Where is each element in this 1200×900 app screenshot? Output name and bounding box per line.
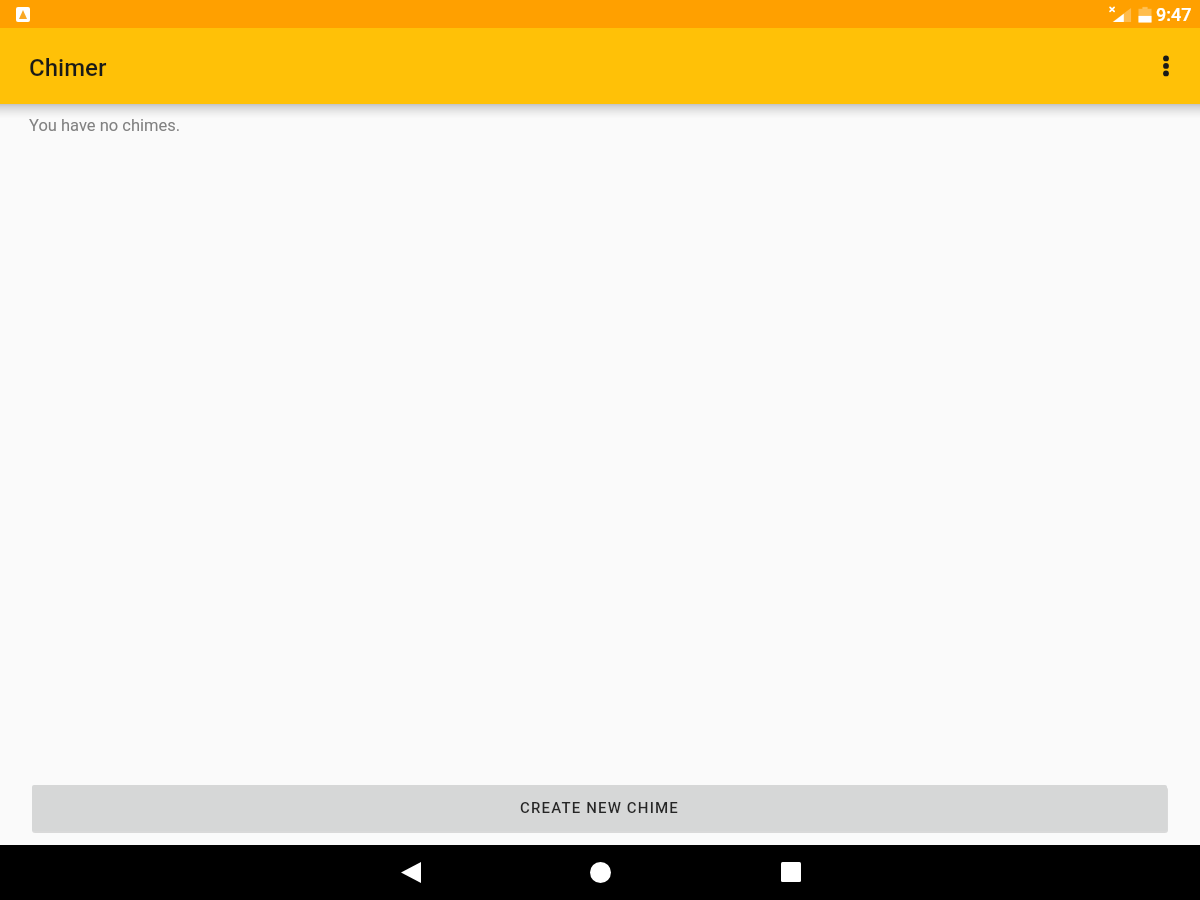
staticText: CREATE NEW CHIME — [520, 799, 679, 817]
button[interactable]: More options — [1138, 38, 1194, 94]
staticText: Chimer — [29, 54, 107, 82]
button[interactable]: CREATE NEW CHIME — [32, 785, 1167, 831]
staticText: You have no chimes. — [29, 116, 181, 135]
staticText: 9:47 — [1156, 4, 1192, 25]
button[interactable]: Home — [576, 848, 624, 896]
button[interactable]: Back — [387, 848, 435, 896]
button[interactable]: Recent apps — [767, 848, 815, 896]
